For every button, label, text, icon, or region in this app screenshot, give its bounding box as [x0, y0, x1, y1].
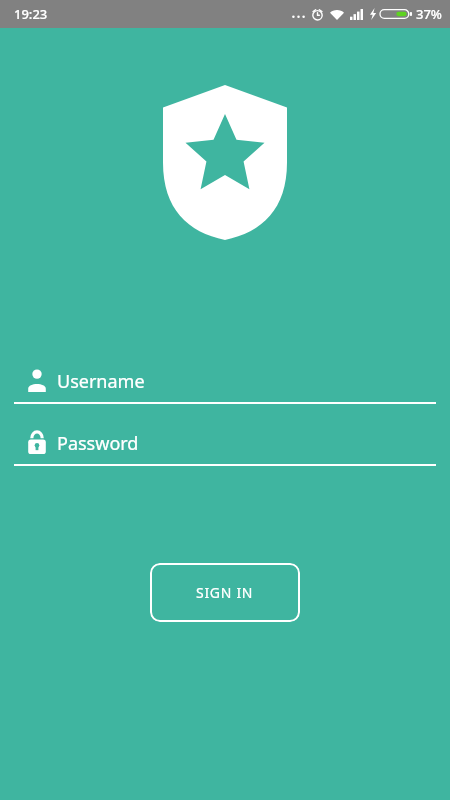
staticText: 19:23 [14, 5, 48, 23]
button[interactable]: Password [14, 420, 436, 466]
staticText: Password [57, 431, 139, 456]
other: Password [27, 430, 47, 454]
other: Username [27, 368, 47, 392]
staticText: Username [57, 369, 145, 394]
button[interactable]: SIGN IN [150, 563, 300, 622]
staticText: 37% [416, 5, 442, 23]
staticText: SIGN IN [196, 583, 254, 602]
button[interactable]: Username [14, 358, 436, 404]
